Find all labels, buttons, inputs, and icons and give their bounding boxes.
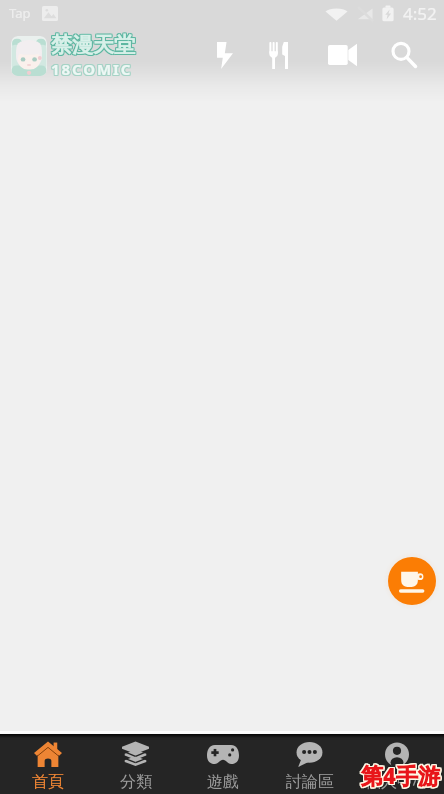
staticText: 禁漫天堂 (50, 32, 134, 58)
button[interactable]: Flash (198, 29, 250, 81)
staticText: Tap (9, 4, 31, 22)
staticText: 禁漫天堂 (52, 33, 136, 59)
button[interactable]: 個人中心 (353, 738, 440, 794)
staticText: 禁漫天堂 (52, 31, 136, 57)
staticText: 禁漫天堂 (50, 33, 134, 59)
staticText: 禁漫天堂 (51, 32, 135, 58)
button[interactable]: 禁漫天堂 (0, 32, 143, 79)
staticText: 禁漫天堂 (51, 33, 135, 59)
staticText: 禁漫天堂 (51, 31, 135, 57)
button[interactable]: 遊戲 (179, 738, 266, 794)
staticText: 第4手游 (361, 760, 440, 790)
staticText: 第4手游 (361, 761, 440, 791)
button[interactable]: Video (316, 29, 368, 81)
staticText: 禁漫天堂 (50, 31, 134, 57)
staticText: 18COMIC (52, 58, 134, 78)
staticText: 第4手游 (361, 759, 440, 789)
staticText: 18COMIC (51, 58, 133, 78)
button[interactable]: Restaurant (253, 29, 305, 81)
staticText: 個人中心 (365, 772, 429, 792)
staticText: 18COMIC (52, 60, 134, 80)
staticText: 18COMIC (50, 59, 132, 79)
button[interactable]: 首頁 (4, 738, 92, 794)
staticText: 18COMIC (50, 58, 132, 78)
staticText: 18COMIC (52, 59, 134, 79)
staticText: 第4手游 (362, 759, 441, 789)
staticText: 第4手游 (360, 760, 439, 790)
staticText: 第4手游 (360, 761, 439, 791)
staticText: 18COMIC (51, 59, 133, 79)
staticText: 18COMIC (50, 60, 132, 80)
button[interactable]: Coffee (388, 557, 436, 605)
button[interactable]: Search (378, 29, 430, 81)
staticText: 禁漫天堂 (52, 32, 136, 58)
staticText: 遊戲 (207, 772, 239, 792)
staticText: 4:52 (403, 2, 437, 25)
staticText: 分類 (120, 772, 152, 792)
button[interactable]: 討論區 (266, 738, 353, 794)
staticText: 討論區 (286, 772, 334, 792)
staticText: 第4手游 (362, 761, 441, 791)
staticText: 首頁 (32, 772, 64, 792)
staticText: 18COMIC (51, 60, 133, 80)
staticText: 第4手游 (362, 760, 441, 790)
staticText: 第4手游 (360, 759, 439, 789)
button[interactable]: 分類 (92, 738, 179, 794)
